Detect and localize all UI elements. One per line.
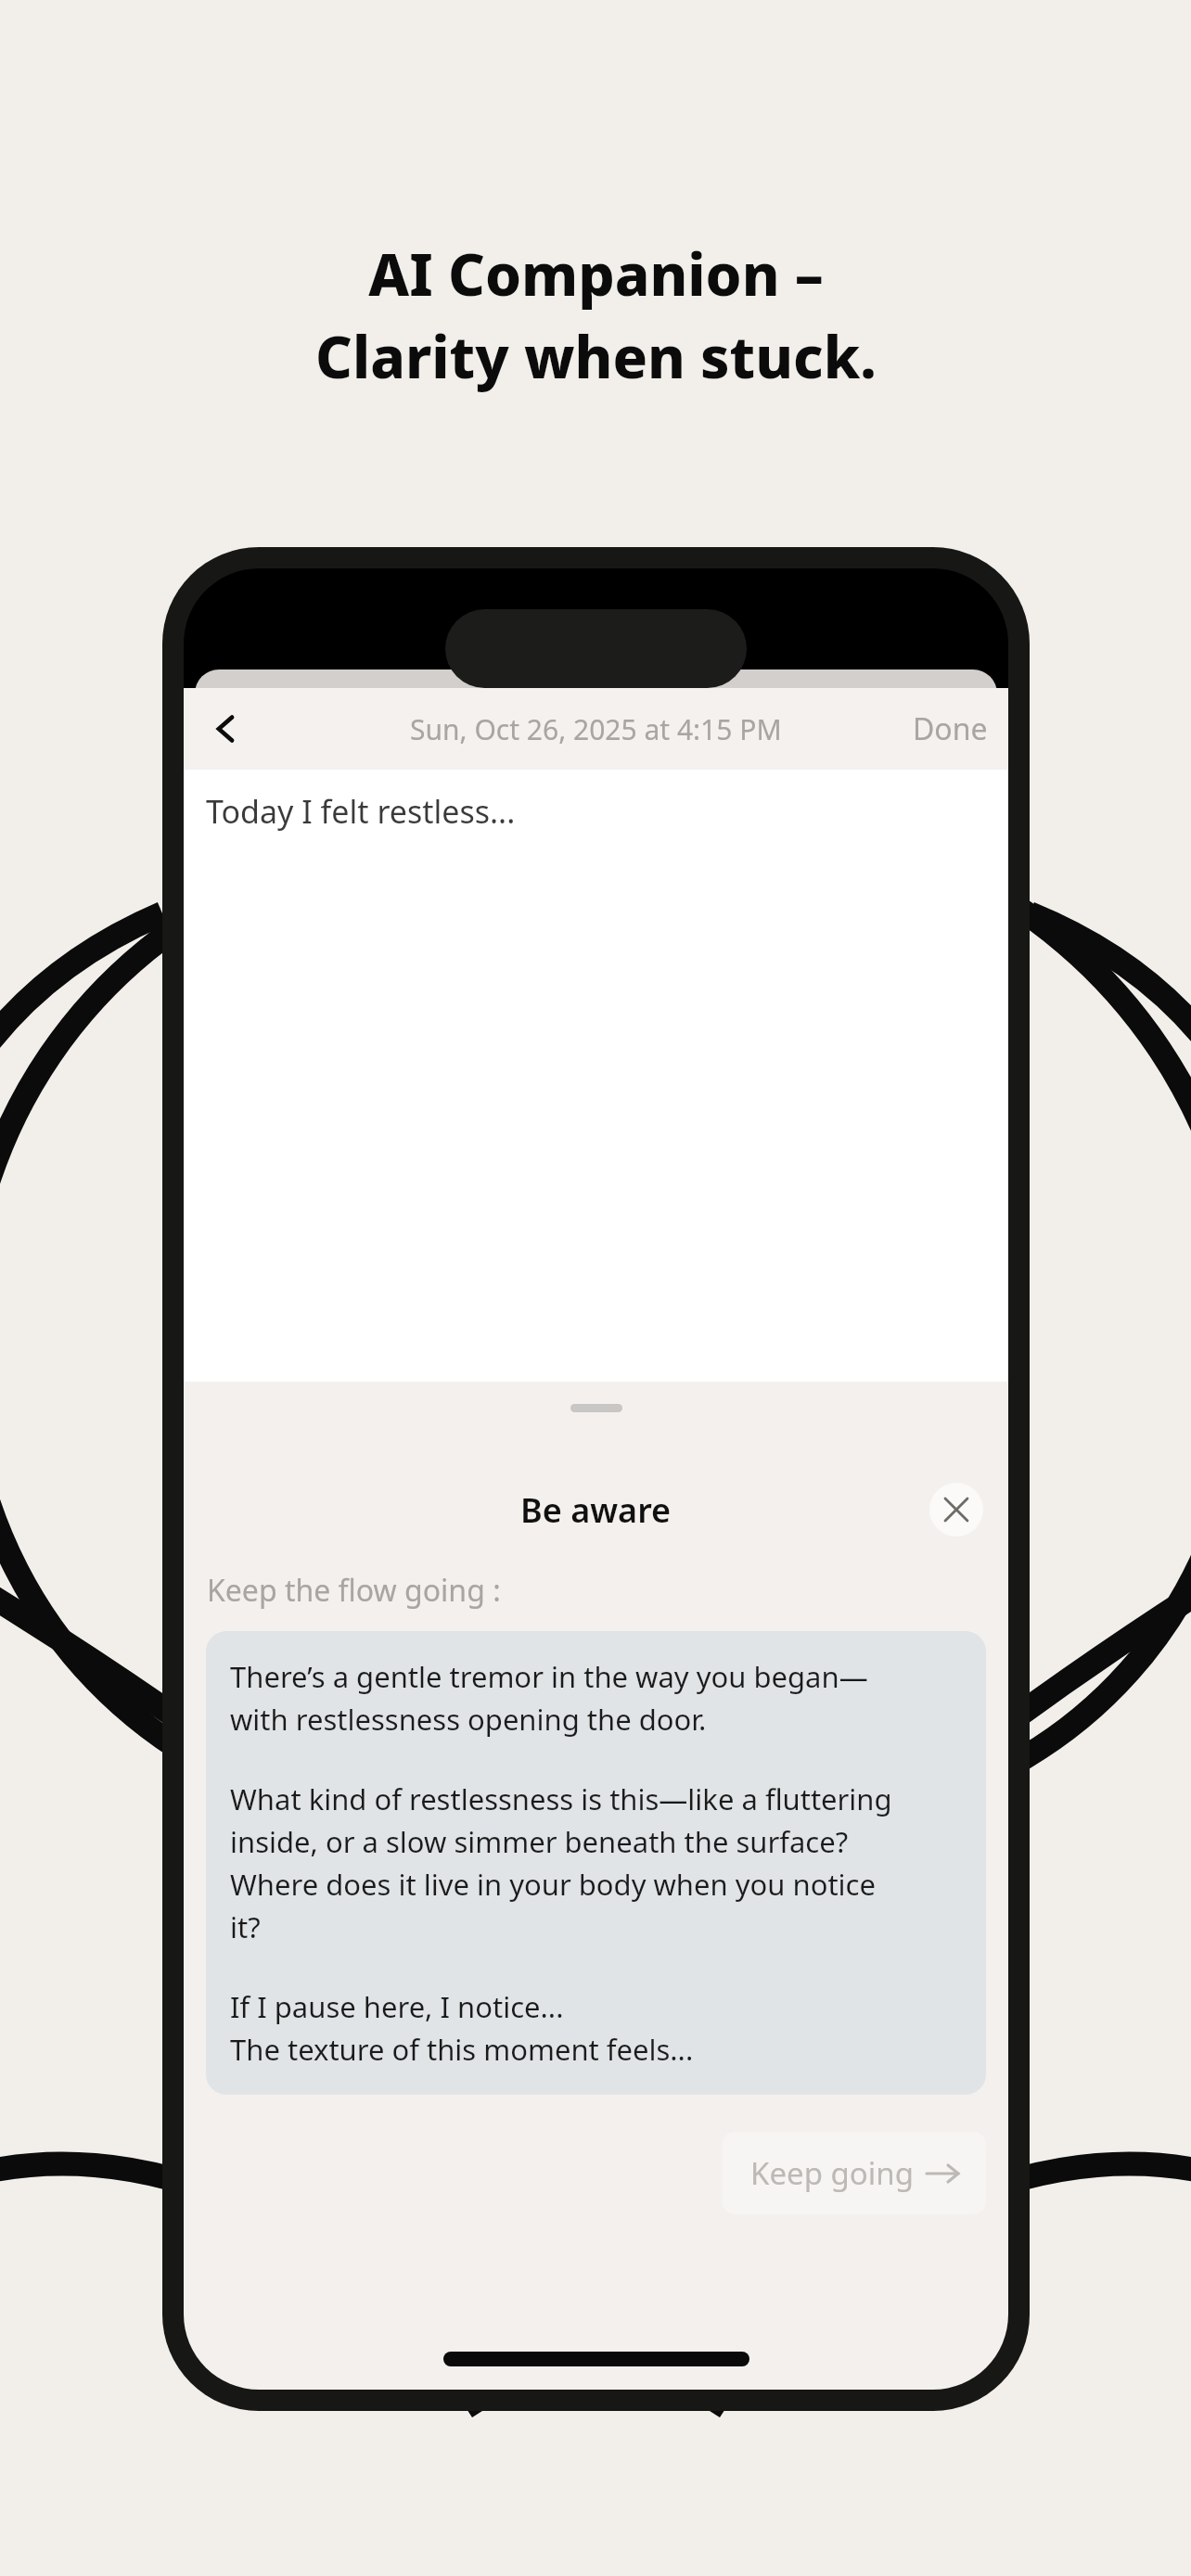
staticText: Keep the flow going : (207, 1570, 501, 1611)
button[interactable]: Keep going (723, 2132, 986, 2214)
button[interactable]: There’s a gentle tremor in the way you b… (206, 1631, 986, 2095)
button[interactable]: Done (892, 694, 1008, 764)
staticText: Be aware (520, 1487, 672, 1533)
staticText: What kind of restlessness is this—like a… (230, 1779, 892, 1946)
staticText: There’s a gentle tremor in the way you b… (230, 1657, 868, 1739)
button[interactable]: Close (929, 1483, 983, 1537)
staticText: Clarity when stuck. (315, 317, 877, 395)
staticText: AI Companion – (368, 235, 824, 312)
staticText: If I pause here, I notice... The texture… (230, 1987, 694, 2069)
button[interactable]: Back (193, 695, 260, 762)
staticText: Keep going (750, 2152, 914, 2194)
staticText: Done (913, 708, 988, 749)
staticText: Today I felt restless... (206, 790, 516, 833)
staticText: Sun, Oct 26, 2025 at 4:15 PM (410, 710, 782, 748)
